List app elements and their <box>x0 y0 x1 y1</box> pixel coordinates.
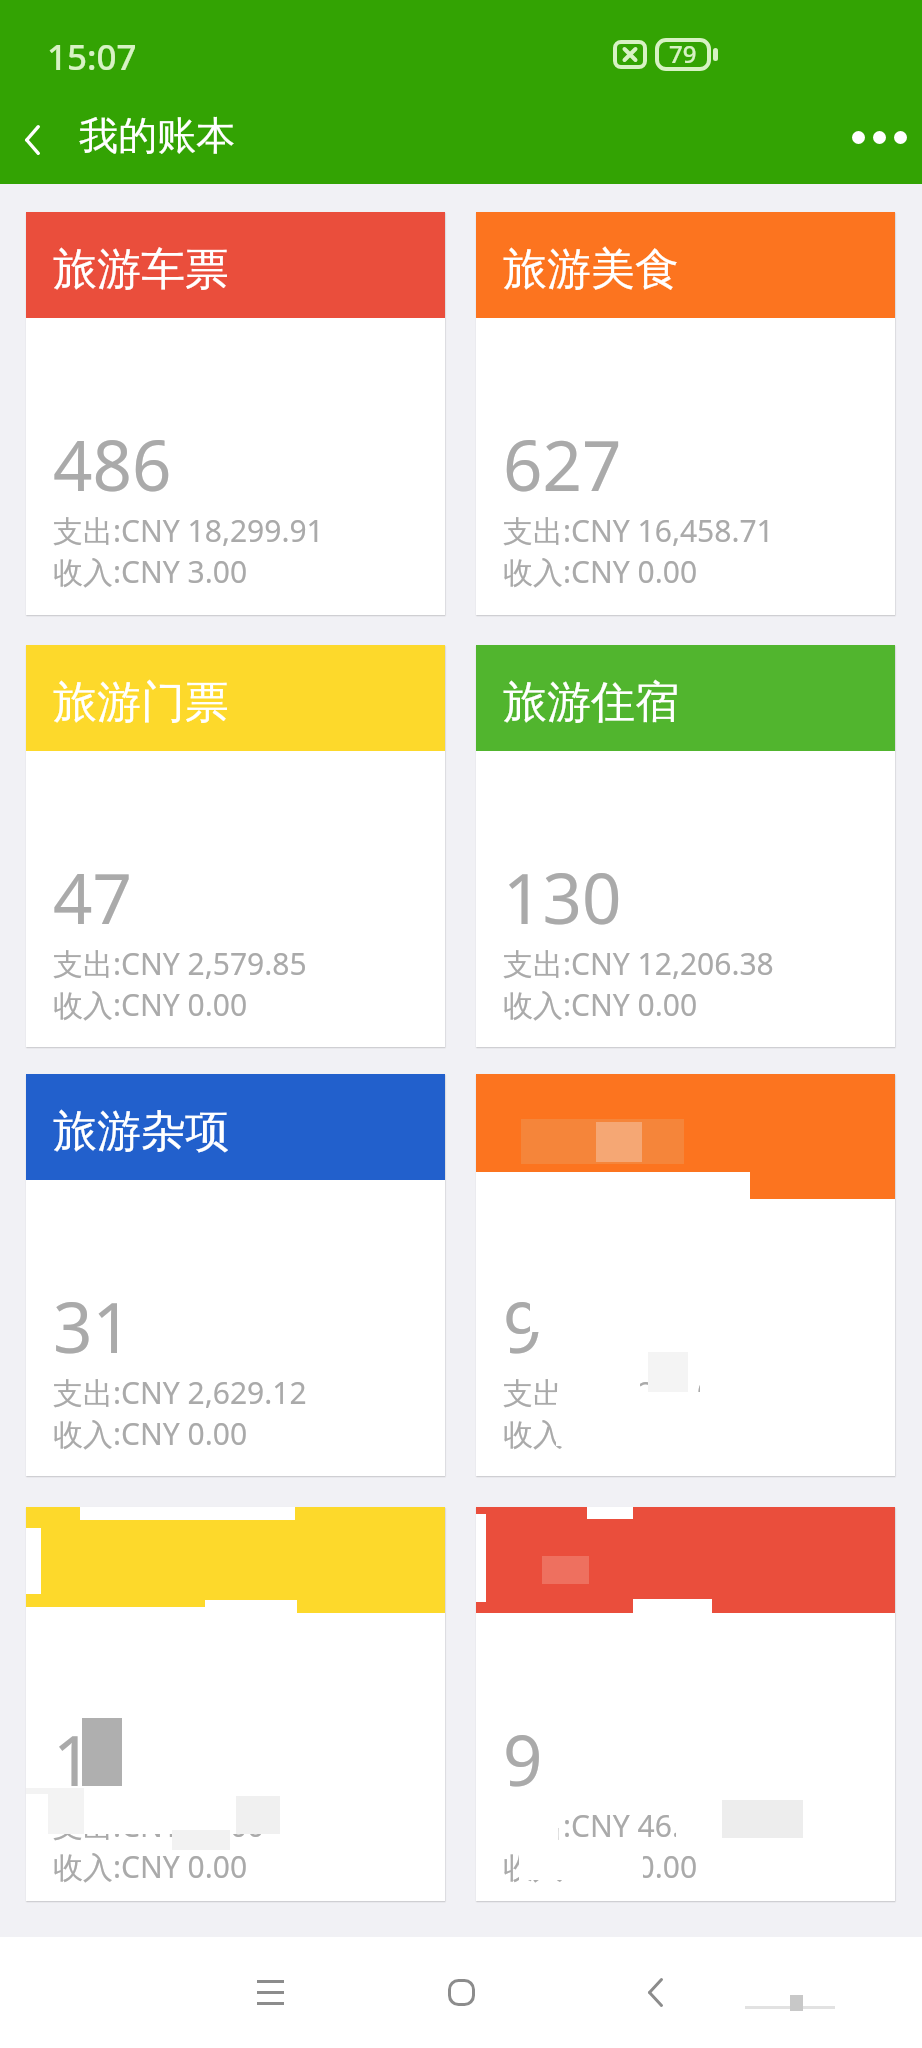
staticText: 486 <box>53 417 172 511</box>
staticText: 收入:CNY 0.00 <box>53 1846 248 1887</box>
staticText: 支出:CNY 16,458.71 <box>503 510 774 551</box>
staticText: 收入:CNY 0.00 <box>503 1846 698 1887</box>
staticText: 收入:CNY 0.00 <box>53 1413 248 1454</box>
staticText: 收入:CNY 0.00 <box>53 984 248 1025</box>
button[interactable]: 1 <box>26 1507 445 1901</box>
staticText: 我的账本 <box>79 111 235 160</box>
button[interactable]: Recent apps <box>215 1937 325 2048</box>
button[interactable]: 9 <box>476 1507 895 1901</box>
staticText: 47 <box>53 850 132 944</box>
staticText: 收入:CNY 0.00 <box>503 1413 698 1454</box>
staticText: 收入:CNY 0.00 <box>503 551 698 592</box>
button[interactable]: Back <box>0 96 64 184</box>
staticText: 支出:CNY 2,579.85 <box>53 943 307 984</box>
staticText: 31 <box>53 1279 132 1373</box>
staticText: 79 <box>669 37 697 70</box>
staticText: 支出:CNY 2,629.12 <box>53 1372 307 1413</box>
staticText: 旅游车票 <box>53 242 229 297</box>
staticText: 支出:CNY 18,299.91 <box>53 510 324 551</box>
staticText: 支出:CNY 12,206.38 <box>503 943 774 984</box>
staticText: 旅游住宿 <box>503 675 679 730</box>
staticText: 9 <box>503 1279 543 1373</box>
button[interactable]: Home <box>406 1937 516 2048</box>
button[interactable]: 旅游车票 <box>26 212 445 615</box>
staticText: 收入:CNY 0.00 <box>503 984 698 1025</box>
staticText: 627 <box>503 417 622 511</box>
staticText: 支出:CNY 212.00 <box>503 1372 732 1413</box>
staticText: 收入:CNY 3.00 <box>53 551 248 592</box>
staticText: 支出:CNY 18.00 <box>53 1805 265 1846</box>
staticText: 15:07 <box>47 33 137 81</box>
staticText: 旅游门票 <box>53 675 229 730</box>
button[interactable]: 旅游杂项 <box>26 1074 445 1476</box>
button[interactable]: 旅游美食 <box>476 212 895 615</box>
button[interactable]: More options <box>822 96 922 184</box>
staticText: 1 <box>53 1712 93 1806</box>
staticText: 旅游美食 <box>503 242 679 297</box>
staticText: 9 <box>503 1712 543 1806</box>
staticText: 支出:CNY 46.00 <box>503 1805 715 1846</box>
button[interactable]: 旅游住宿 <box>476 645 895 1047</box>
button[interactable]: Back <box>600 1937 710 2048</box>
staticText: 旅游杂项 <box>53 1104 229 1159</box>
button[interactable]: 9 <box>476 1074 895 1476</box>
staticText: 130 <box>503 850 622 944</box>
button[interactable]: 旅游门票 <box>26 645 445 1047</box>
